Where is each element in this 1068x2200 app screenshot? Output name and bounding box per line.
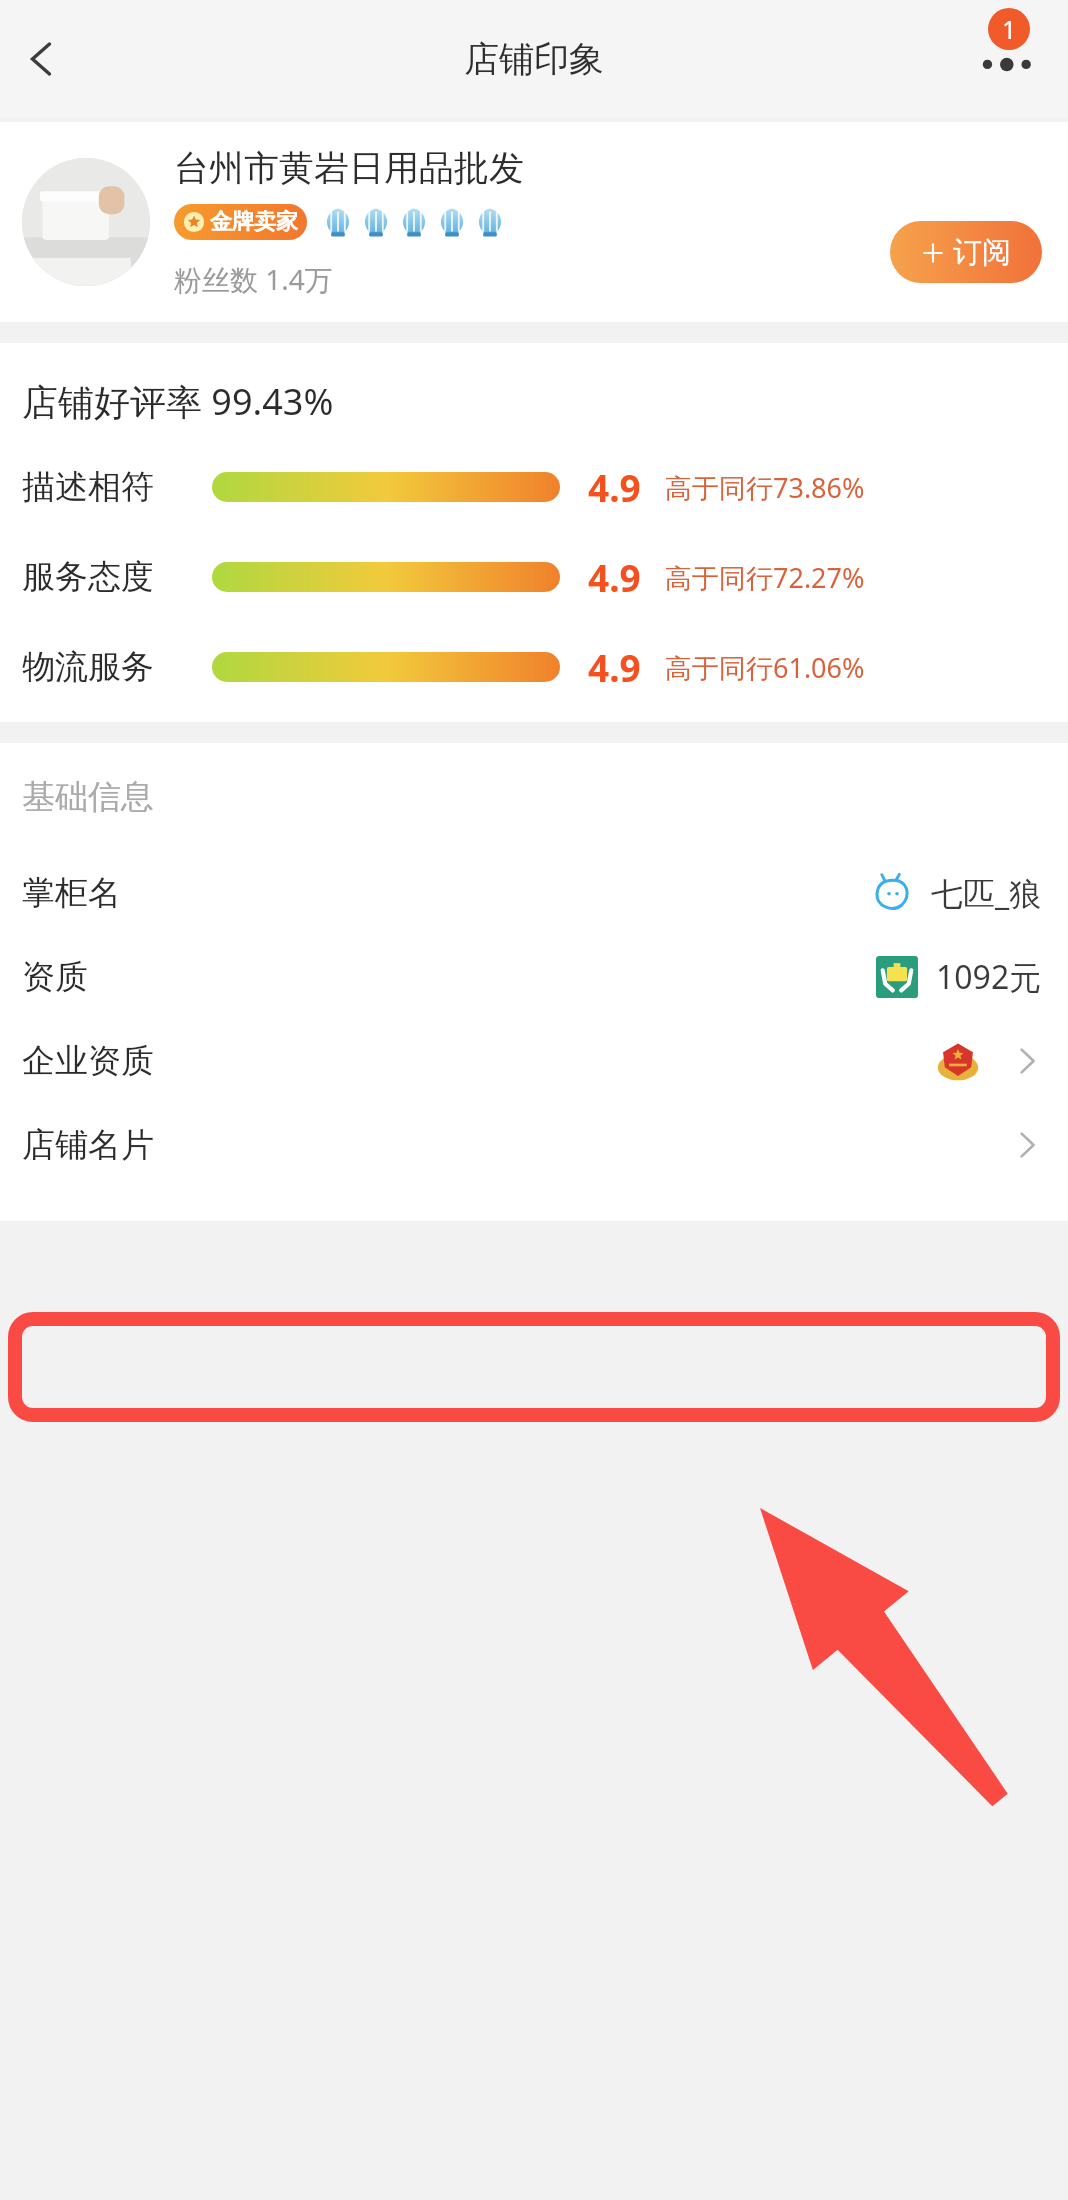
staticText: 4.9 (588, 642, 641, 692)
staticText: 4.9 (588, 552, 641, 602)
staticText: 高于同行72.27% (665, 559, 865, 596)
button[interactable]: 资质 (0, 935, 1068, 1019)
staticText: 物流服务 (22, 646, 194, 688)
staticText: 高于同行61.06% (665, 649, 865, 686)
staticText: 店铺好评率 99.43% (22, 377, 334, 426)
staticText: 高于同行73.86% (665, 469, 865, 506)
staticText: 台州市黄岩日用品批发 (174, 146, 524, 190)
staticText: 资质 (22, 956, 88, 998)
button[interactable]: 掌柜名 (0, 851, 1068, 935)
staticText: 七匹_狼 (931, 871, 1042, 915)
staticText: 订阅 (953, 234, 1011, 271)
button[interactable]: 订阅 (890, 221, 1042, 283)
button[interactable]: Shop avatar (22, 158, 150, 286)
staticText: 金牌卖家 (210, 208, 298, 236)
staticText: 1 (1002, 12, 1017, 46)
button[interactable]: 企业资质 (0, 1019, 1068, 1103)
staticText: 描述相符 (22, 466, 194, 508)
staticText: 1092元 (936, 955, 1042, 999)
staticText: 店铺名片 (22, 1124, 154, 1166)
staticText: 店铺印象 (464, 37, 604, 81)
button[interactable]: More options (960, 14, 1050, 104)
staticText: 企业资质 (22, 1040, 154, 1082)
button[interactable]: 店铺名片 (0, 1103, 1068, 1187)
staticText: 粉丝数 1.4万 (174, 260, 333, 298)
staticText: 基础信息 (22, 776, 154, 818)
staticText: 掌柜名 (22, 872, 121, 914)
staticText: 服务态度 (22, 556, 194, 598)
button[interactable]: Back (6, 23, 78, 95)
staticText: 4.9 (588, 462, 641, 512)
